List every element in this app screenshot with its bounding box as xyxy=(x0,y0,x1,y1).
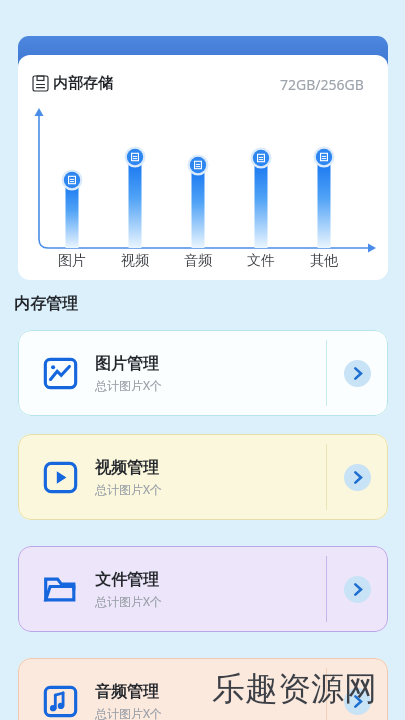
button[interactable]: 音频管理 xyxy=(327,658,388,720)
staticText: 总计图片X个 xyxy=(95,705,163,720)
staticText: 音频 xyxy=(178,252,218,270)
button[interactable]: 视频管理 xyxy=(327,434,388,520)
staticText: 其他 xyxy=(304,252,344,270)
staticText: 内存管理 xyxy=(14,294,78,314)
staticText: 总计图片X个 xyxy=(95,377,163,393)
staticText: 乐趣资源网 xyxy=(212,668,377,710)
button[interactable]: 文件管理 xyxy=(327,546,388,632)
staticText: 音频管理 xyxy=(95,682,159,702)
button[interactable]: 音频管理 xyxy=(18,658,388,720)
staticText: 文件 xyxy=(241,252,281,270)
button[interactable]: 文件管理 xyxy=(18,546,388,632)
staticText: 文件管理 xyxy=(95,570,159,590)
staticText: 视频 xyxy=(115,252,155,270)
staticText: 内部存储 xyxy=(53,74,113,93)
staticText: 72GB/256GB xyxy=(280,75,364,94)
staticText: 视频管理 xyxy=(95,458,159,478)
staticText: 总计图片X个 xyxy=(95,481,163,497)
button[interactable]: 图片管理 xyxy=(327,330,388,416)
button[interactable]: 视频管理 xyxy=(18,434,388,520)
staticText: 总计图片X个 xyxy=(95,593,163,609)
staticText: 图片管理 xyxy=(95,354,159,374)
button[interactable]: 图片管理 xyxy=(18,330,388,416)
staticText: 图片 xyxy=(52,252,92,270)
